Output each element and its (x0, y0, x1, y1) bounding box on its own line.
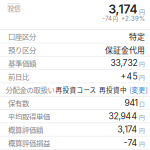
staticText: 投信 (8, 4, 20, 11)
staticText: 32,944 (108, 112, 137, 121)
staticText: 再投資コース (55, 86, 96, 94)
button[interactable]: [変更] (129, 86, 147, 94)
staticText: -74 (123, 138, 137, 147)
staticText: 3,174 (117, 125, 137, 134)
button[interactable]: 基準価額 (0, 57, 150, 70)
staticText: 円 (139, 113, 145, 121)
button[interactable]: 概算評価額 (0, 123, 150, 136)
staticText: +45 (120, 72, 137, 81)
staticText: 円 (139, 8, 145, 15)
staticText: +2.39% (121, 16, 145, 21)
button[interactable]: 概算評価損益 (0, 136, 150, 150)
button[interactable]: 分配金の取扱い (0, 83, 150, 96)
staticText: 基準価額 (8, 58, 36, 67)
staticText: 概算評価額 (8, 125, 43, 134)
staticText: 941 (124, 98, 137, 107)
button[interactable]: 保有数 (0, 96, 150, 110)
staticText: 保有数 (8, 98, 29, 107)
staticText: [変更] (129, 86, 147, 94)
staticText: 33,732 (110, 59, 137, 67)
staticText: 口 (139, 100, 145, 107)
staticText: 円 (139, 140, 145, 147)
staticText: 円 (139, 60, 145, 67)
staticText: 円 (112, 15, 118, 22)
staticText: 再投資中 (99, 86, 127, 94)
button[interactable]: 前日比 (0, 70, 150, 83)
button[interactable]: 口座区分 (0, 30, 150, 43)
button[interactable]: 預り区分 (0, 43, 150, 57)
staticText: 保証金代用 (105, 45, 145, 55)
button[interactable]: 平均取得単価 (0, 110, 150, 123)
staticText: 特定 (129, 32, 145, 41)
staticText: 3,174 (108, 3, 137, 15)
staticText: 預り区分 (8, 45, 36, 54)
staticText: 円 (139, 73, 145, 81)
staticText: -74 (102, 16, 112, 21)
staticText: 前日比 (8, 72, 29, 81)
staticText: 分配金の取扱い (5, 85, 54, 94)
staticText: 概算評価損益 (8, 138, 50, 147)
staticText: 口座区分 (8, 32, 36, 41)
button[interactable]: 投信 (8, 3, 20, 12)
staticText: 円 (139, 127, 145, 134)
staticText: 平均取得単価 (8, 112, 50, 121)
